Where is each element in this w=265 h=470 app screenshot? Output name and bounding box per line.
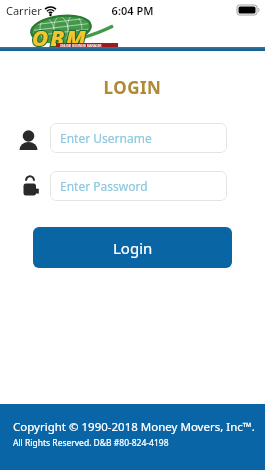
- staticText: Enter Password: [60, 178, 148, 194]
- button[interactable]: Enter Username: [50, 123, 227, 153]
- staticText: All Rights Reserved. D&B #80-824-4198: [13, 437, 169, 449]
- staticText: OBM: [32, 22, 88, 52]
- staticText: 6:04 PM: [0, 3, 265, 18]
- staticText: OBM: [32, 22, 88, 52]
- staticText: Enter Username: [60, 130, 152, 146]
- staticText: LOGIN: [0, 76, 265, 99]
- staticText: Copyright © 1990-2018 Money Movers, Inc™…: [13, 419, 255, 435]
- staticText: ONLINE BUSINESS MANAGER: [60, 44, 102, 48]
- staticText: Login: [113, 238, 153, 258]
- button[interactable]: Login: [33, 227, 232, 268]
- button[interactable]: Enter Password: [50, 171, 227, 201]
- button[interactable]: Copyright © 1990-2018 Money Movers, Inc™…: [0, 404, 265, 470]
- staticText: Carrier: [6, 3, 42, 18]
